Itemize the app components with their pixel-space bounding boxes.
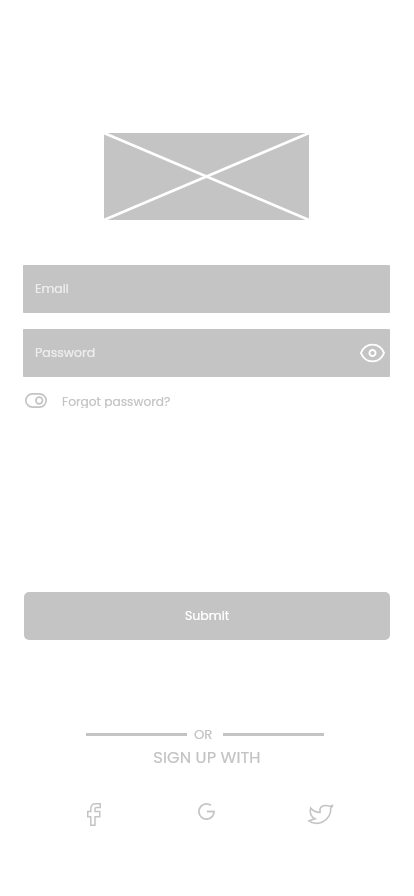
button[interactable]: Sign up with Facebook	[72, 792, 116, 836]
staticText: Submit	[185, 607, 230, 624]
other: Logo image placeholder	[104, 133, 309, 220]
button[interactable]: Submit	[24, 592, 390, 640]
staticText: OR	[194, 725, 213, 743]
button[interactable]: Password	[23, 329, 390, 377]
staticText: Forgot password?	[62, 393, 171, 408]
staticText: Password	[35, 344, 96, 361]
staticText: Email	[35, 280, 69, 297]
staticText: SIGN UP WITH	[0, 746, 414, 769]
button[interactable]: Email	[23, 265, 390, 313]
button[interactable]: Sign up with Twitter	[299, 792, 343, 836]
button[interactable]: Show password	[357, 338, 387, 368]
button[interactable]: Toggle	[25, 393, 47, 408]
button[interactable]: Sign up with Google	[184, 789, 228, 833]
